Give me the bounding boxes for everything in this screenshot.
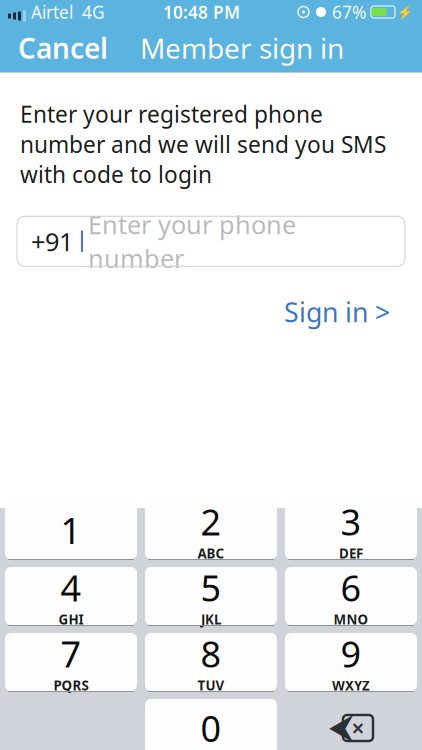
staticText: Enter your registered phone number and w… (20, 99, 386, 189)
staticText: 6 (340, 564, 361, 611)
button[interactable]: 4 (5, 567, 137, 625)
staticText: 4 (60, 564, 81, 611)
staticText: +91 (31, 224, 73, 258)
staticText: ABC (197, 545, 224, 562)
staticText: 7 (60, 630, 81, 677)
button[interactable]: 2 (145, 501, 277, 559)
staticText: 4G (82, 0, 105, 23)
staticText: 2 (200, 498, 221, 545)
staticText: WXYZ (332, 677, 370, 694)
staticText: 5 (200, 564, 221, 611)
staticText: Cancel (18, 29, 108, 67)
button[interactable]: Cancel (0, 21, 126, 75)
staticText: DEF (339, 545, 363, 562)
staticText: 10:48 PM (163, 0, 240, 23)
staticText: ⮜ (329, 711, 354, 745)
staticText: Airtel (31, 0, 73, 23)
staticText: MNO (333, 611, 368, 628)
staticText: TUV (197, 677, 224, 694)
button[interactable]: 1 (5, 501, 137, 559)
staticText: 67% (332, 0, 366, 23)
staticText: PQRS (53, 677, 88, 694)
staticText: Sign in > (284, 294, 390, 330)
staticText: 0 (200, 704, 221, 750)
button[interactable]: 3 (285, 501, 417, 559)
button[interactable]: 5 (145, 567, 277, 625)
staticText: 8 (200, 630, 221, 677)
staticText: 3 (340, 498, 361, 545)
staticText: Enter your phone number (88, 208, 296, 275)
staticText: 9 (340, 630, 361, 677)
button[interactable]: 9 (285, 633, 417, 691)
staticText: × (351, 713, 364, 743)
button[interactable]: 6 (285, 567, 417, 625)
staticText: Member sign in (140, 29, 344, 67)
staticText: ⚡ (397, 4, 414, 20)
staticText: JKL (201, 611, 221, 628)
staticText: 1 (60, 506, 81, 554)
button[interactable]: Delete (285, 699, 417, 750)
button[interactable]: 7 (5, 633, 137, 691)
button[interactable]: 0 (145, 699, 277, 750)
button[interactable]: Sign in > (274, 286, 400, 338)
staticText: GHI (58, 611, 83, 628)
button[interactable]: 8 (145, 633, 277, 691)
